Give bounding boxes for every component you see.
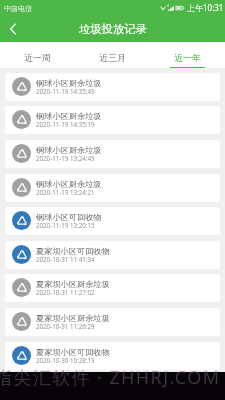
- staticText: 2020-11-19 14:35:49: [36, 87, 95, 95]
- button[interactable]: 钢球小区厨余垃圾: [5, 106, 220, 134]
- staticText: 夏家坝小区厨余垃圾: [36, 313, 110, 323]
- button[interactable]: Back: [0, 16, 26, 42]
- button[interactable]: 钢球小区厨余垃圾: [5, 140, 220, 168]
- staticText: 垃圾投放记录: [79, 22, 147, 36]
- staticText: 夏家坝小区可回收物: [36, 347, 110, 357]
- button[interactable]: 夏家坝小区厨余垃圾: [5, 274, 220, 302]
- staticText: 2020-10-31 11:27:02: [36, 288, 95, 296]
- staticText: 中国电信: [4, 4, 32, 13]
- staticText: 钢球小区厨余垃圾: [36, 111, 102, 121]
- staticText: 近三月: [99, 52, 126, 63]
- staticText: 2020-11-19 14:35:19: [36, 120, 95, 128]
- button[interactable]: 近三月: [75, 42, 150, 68]
- button[interactable]: 钢球小区厨余垃圾: [5, 174, 220, 202]
- staticText: 钢球小区厨余垃圾: [36, 179, 102, 189]
- staticText: 上午10:31: [187, 2, 224, 13]
- staticText: 钢球小区厨余垃圾: [36, 145, 102, 155]
- staticText: 2020-11-19 13:20:15: [36, 221, 95, 229]
- staticText: 指尖汇软件 · ZHHRJ.COM: [0, 365, 219, 390]
- button[interactable]: 钢球小区可回收物: [5, 207, 220, 235]
- button[interactable]: 夏家坝小区厨余垃圾: [5, 308, 220, 336]
- staticText: 2020-11-19 13:24:21: [36, 188, 95, 196]
- button[interactable]: 夏家坝小区可回收物: [5, 342, 220, 370]
- staticText: 2020-11-19 13:24:49: [36, 154, 95, 162]
- staticText: 夏家坝小区可回收物: [36, 246, 110, 256]
- staticText: 钢球小区厨余垃圾: [36, 78, 102, 88]
- button[interactable]: 夏家坝小区可回收物: [5, 241, 220, 269]
- staticText: 近一年: [174, 52, 201, 63]
- button[interactable]: 近一周: [0, 42, 75, 68]
- staticText: 2020-10-31 11:41:34: [36, 255, 95, 263]
- staticText: 2020-10-31 11:26:29: [36, 322, 95, 330]
- staticText: 钢球小区可回收物: [36, 212, 102, 222]
- staticText: 2020-10-30 10:28:19: [36, 356, 95, 364]
- button[interactable]: 近一年: [150, 42, 225, 68]
- button[interactable]: 钢球小区厨余垃圾: [5, 73, 220, 101]
- staticText: 近一周: [24, 52, 51, 63]
- staticText: 夏家坝小区厨余垃圾: [36, 279, 110, 289]
